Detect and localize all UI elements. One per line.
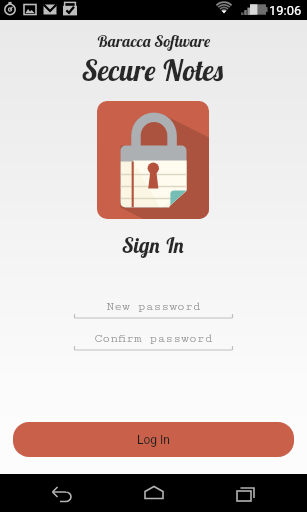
button[interactable]: Log In	[13, 422, 294, 457]
button[interactable]: New password	[74, 298, 233, 323]
staticText: Log In	[137, 433, 170, 447]
button[interactable]: Back	[42, 474, 82, 512]
staticText: Baracca Software	[0, 31, 307, 51]
button[interactable]: Recent apps	[225, 474, 265, 512]
staticText: Secure Notes	[0, 52, 307, 88]
staticText: Confirm password	[74, 331, 233, 345]
staticText: Sign In	[0, 232, 307, 258]
staticText: 19:06	[269, 3, 302, 18]
button[interactable]: Confirm password	[74, 330, 233, 355]
button[interactable]: Home	[134, 474, 174, 512]
staticText: New password	[74, 299, 233, 313]
